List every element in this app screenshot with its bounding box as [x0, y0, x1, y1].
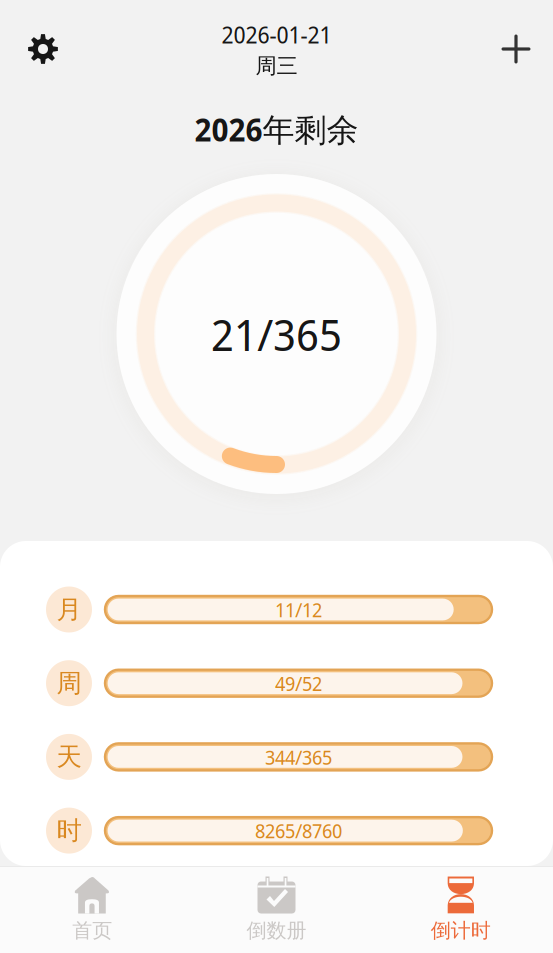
staticText: 周三	[255, 52, 297, 79]
staticText: 时	[56, 815, 81, 846]
button[interactable]: Settings	[14, 22, 72, 76]
staticText: 首页	[72, 918, 112, 943]
staticText: 天	[56, 741, 81, 773]
staticText: 8265/8760	[255, 817, 342, 844]
button[interactable]: Add	[493, 22, 539, 76]
staticText: 周	[56, 667, 81, 699]
staticText: 11/12	[275, 596, 322, 623]
staticText: 344/365	[265, 743, 332, 770]
staticText: 倒计时	[431, 918, 491, 943]
staticText: 月	[56, 593, 81, 625]
button[interactable]: 首页	[0, 876, 184, 943]
staticText: 21/365	[211, 304, 342, 364]
staticText: 倒数册	[246, 918, 306, 943]
staticText: 2026-01-21	[221, 19, 331, 50]
button[interactable]: 倒计时	[369, 876, 553, 943]
staticText: 49/52	[275, 670, 322, 697]
button[interactable]: 倒数册	[184, 876, 369, 943]
staticText: 2026年剩余	[194, 107, 358, 151]
